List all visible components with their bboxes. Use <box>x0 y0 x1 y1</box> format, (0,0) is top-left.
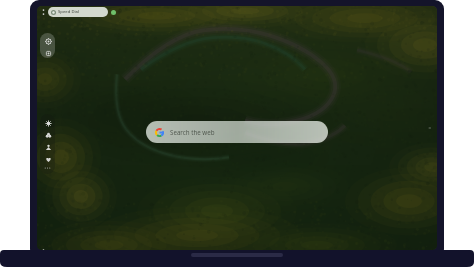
button[interactable]: Search the web <box>146 121 328 143</box>
button[interactable]: New tab <box>111 10 116 15</box>
button[interactable]: Pinboards <box>42 153 54 165</box>
button[interactable]: Messengers <box>42 117 54 129</box>
button[interactable]: Player <box>42 129 54 141</box>
button[interactable]: Opera menu <box>42 35 54 47</box>
staticText: Search the web <box>170 128 215 136</box>
button[interactable]: Crypto wallet <box>42 141 54 153</box>
staticText: Speed Dial <box>58 9 80 15</box>
button[interactable]: Speed Dial <box>48 7 108 17</box>
button[interactable]: Customize start page <box>42 48 54 58</box>
